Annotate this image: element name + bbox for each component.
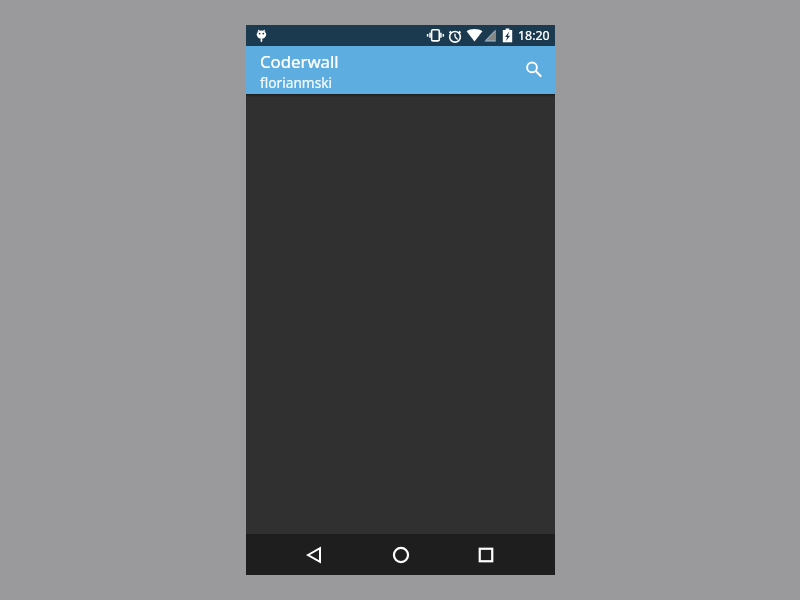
staticText: Coderwall [260,50,339,73]
button[interactable]: Coderwall [246,46,555,94]
button[interactable]: Home [377,534,425,575]
staticText: florianmski [260,73,333,92]
button[interactable]: Back [290,534,338,575]
button[interactable]: Search [512,46,552,94]
staticText: 18:20 [518,27,550,44]
button[interactable]: Recent apps [462,534,510,575]
